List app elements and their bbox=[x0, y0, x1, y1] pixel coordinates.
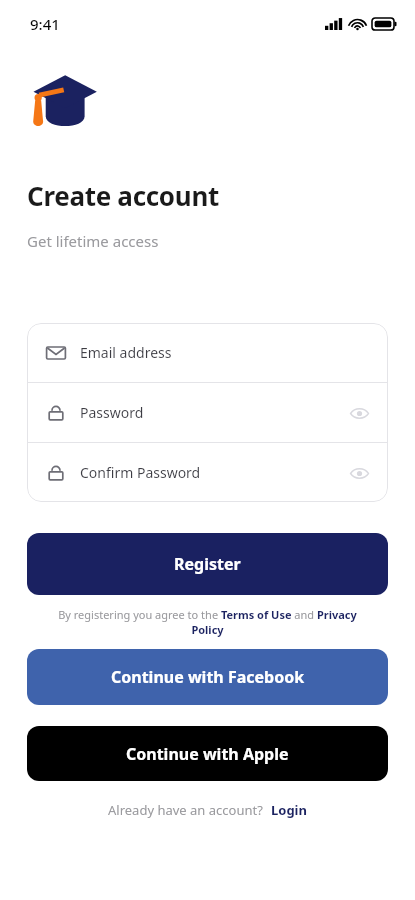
staticText: By registering you agree to the Terms of… bbox=[50, 607, 365, 637]
staticText: Already have an account? bbox=[108, 801, 263, 819]
staticText: Continue with Facebook bbox=[111, 666, 305, 688]
staticText: Login bbox=[271, 801, 307, 819]
button[interactable]: Email address bbox=[27, 323, 388, 382]
staticText: Continue with Apple bbox=[126, 743, 289, 765]
button[interactable]: Login bbox=[271, 801, 307, 819]
button[interactable]: Continue with Facebook bbox=[27, 649, 388, 705]
staticText: Password bbox=[80, 403, 144, 422]
button[interactable]: By registering you agree to the Terms of… bbox=[50, 607, 365, 637]
staticText: Confirm Password bbox=[80, 463, 201, 482]
staticText: Create account bbox=[27, 178, 219, 213]
button[interactable]: Register bbox=[27, 533, 388, 595]
staticText: Register bbox=[174, 553, 241, 575]
staticText: 9:41 bbox=[30, 14, 60, 34]
staticText: Email address bbox=[80, 343, 172, 362]
button[interactable]: Show password bbox=[346, 460, 372, 486]
button[interactable]: Continue with Apple bbox=[27, 726, 388, 781]
button[interactable]: Confirm Password bbox=[27, 443, 388, 502]
button[interactable]: Password bbox=[27, 383, 388, 442]
staticText: Get lifetime access bbox=[27, 231, 159, 251]
button[interactable]: Show password bbox=[346, 400, 372, 426]
